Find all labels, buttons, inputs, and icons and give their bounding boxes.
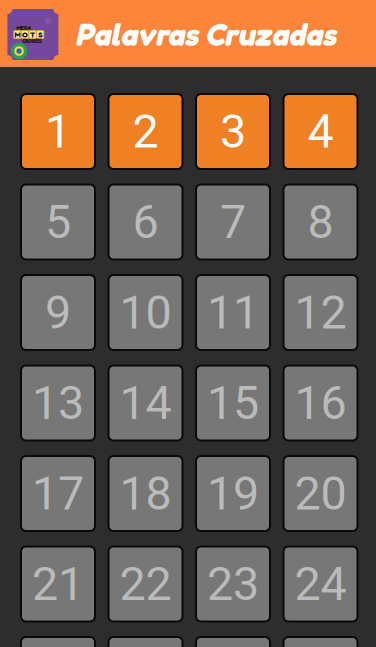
button[interactable]: 11 (196, 275, 270, 350)
button[interactable]: 5 (21, 184, 95, 259)
staticText: T (30, 30, 35, 39)
button[interactable]: 7 (196, 184, 270, 259)
staticText: 19 (207, 466, 259, 521)
button[interactable]: 8 (283, 184, 357, 259)
staticText: CROISÉS (22, 38, 42, 44)
staticText: Palavras Cruzadas (75, 16, 336, 53)
staticText: S (38, 30, 42, 39)
button[interactable]: 4 (283, 94, 357, 169)
button[interactable]: 26 (108, 637, 182, 647)
staticText: 21 (32, 557, 84, 611)
staticText: 11 (207, 285, 259, 340)
staticText: 23 (207, 557, 259, 611)
button[interactable]: Mega Mots Croisés (7, 9, 58, 60)
staticText: O (22, 30, 28, 39)
button[interactable]: 20 (283, 456, 357, 531)
staticText: 10 (119, 285, 171, 340)
button[interactable]: 6 (108, 184, 182, 259)
staticText: 15 (207, 376, 259, 430)
button[interactable]: 2 (108, 94, 182, 169)
button[interactable]: 1 (21, 94, 95, 169)
button[interactable]: 13 (21, 365, 95, 440)
button[interactable]: 16 (283, 365, 357, 440)
staticText: 9 (45, 285, 71, 340)
staticText: 8 (307, 195, 333, 249)
button[interactable]: 15 (196, 365, 270, 440)
staticText: 2 (132, 104, 158, 159)
button[interactable]: 24 (283, 546, 357, 621)
staticText: 24 (294, 557, 346, 611)
staticText: 14 (119, 376, 171, 430)
button[interactable]: 9 (21, 275, 95, 350)
button[interactable]: 19 (196, 456, 270, 531)
staticText: M (14, 30, 20, 39)
staticText: 7 (220, 195, 246, 249)
staticText: 18 (119, 466, 171, 521)
button[interactable]: 22 (108, 546, 182, 621)
button[interactable]: 21 (21, 546, 95, 621)
button[interactable]: 14 (108, 365, 182, 440)
button[interactable]: 27 (196, 637, 270, 647)
staticText: MEGA (16, 25, 31, 31)
button[interactable]: 23 (196, 546, 270, 621)
button[interactable]: 18 (108, 456, 182, 531)
button[interactable]: 17 (21, 456, 95, 531)
staticText: 17 (32, 466, 84, 521)
button[interactable]: 3 (196, 94, 270, 169)
staticText: 16 (294, 376, 346, 430)
button[interactable]: 28 (283, 637, 357, 647)
staticText: 13 (32, 376, 84, 430)
staticText: 5 (45, 195, 71, 249)
staticText: 1 (45, 104, 71, 159)
staticText: 22 (119, 557, 171, 611)
staticText: 20 (294, 466, 346, 521)
staticText: 4 (307, 104, 333, 159)
button[interactable]: 10 (108, 275, 182, 350)
staticText: 3 (220, 104, 246, 159)
button[interactable]: 25 (21, 637, 95, 647)
button[interactable]: 12 (283, 275, 357, 350)
staticText: 12 (294, 285, 346, 340)
staticText: 6 (132, 195, 158, 249)
